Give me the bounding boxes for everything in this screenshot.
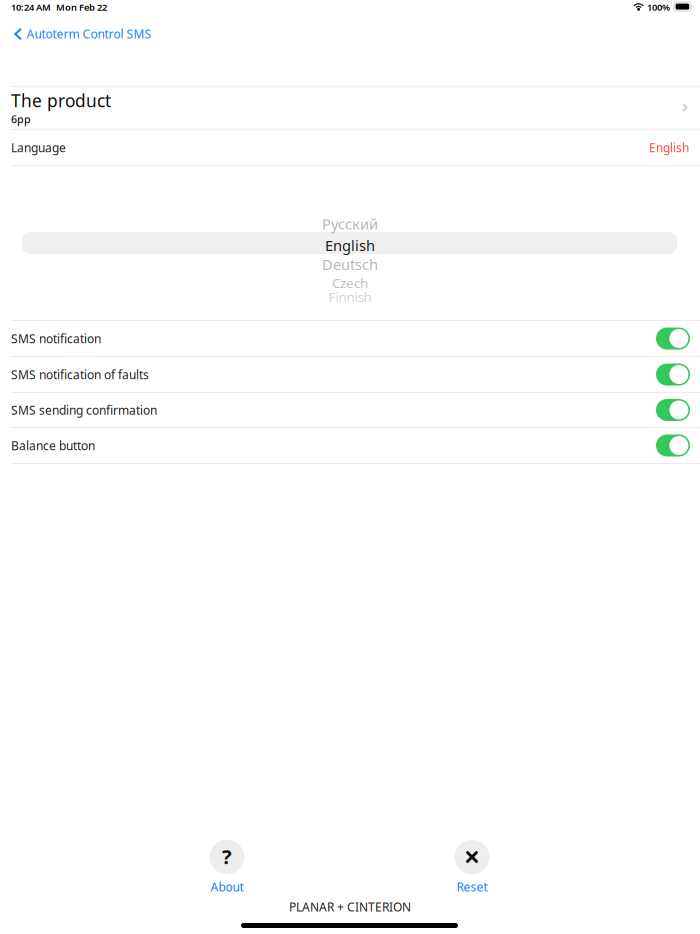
button[interactable]: ? xyxy=(192,840,262,895)
staticText: Balance button xyxy=(11,437,95,453)
button[interactable]: Balance button xyxy=(0,428,700,463)
staticText: Finnish xyxy=(328,288,371,306)
staticText: English xyxy=(649,139,689,155)
staticText: English xyxy=(325,235,375,255)
staticText: SMS sending confirmation xyxy=(11,402,157,418)
button[interactable]: SMS sending confirmation xyxy=(0,393,700,427)
button[interactable]: Autoterm Control SMS xyxy=(14,21,159,47)
staticText: PLANAR + CINTERION xyxy=(289,899,411,915)
staticText: 10:24 AM xyxy=(11,1,51,13)
staticText: Czech xyxy=(332,274,368,292)
button[interactable]: The product xyxy=(0,87,700,129)
staticText: 100% xyxy=(647,1,670,13)
staticText: Autoterm Control SMS xyxy=(26,26,151,42)
staticText: Deutsch xyxy=(322,254,378,274)
staticText: Mon Feb 22 xyxy=(56,1,107,13)
staticText: 6pp xyxy=(11,112,31,126)
staticText: SMS notification of faults xyxy=(11,366,149,382)
button[interactable]: SMS notification xyxy=(0,321,700,356)
staticText: Language xyxy=(11,139,66,155)
staticText: About xyxy=(210,879,243,895)
staticText: Русский xyxy=(322,214,378,233)
button[interactable]: SMS notification of faults xyxy=(0,357,700,392)
button[interactable]: Русский xyxy=(180,206,520,326)
staticText: Italiano xyxy=(334,299,366,311)
staticText: ? xyxy=(222,843,232,870)
staticText: Reset xyxy=(456,879,487,895)
staticText: The product xyxy=(11,89,111,112)
staticText: SMS notification xyxy=(11,330,101,346)
button[interactable]: Reset xyxy=(437,840,507,895)
button[interactable]: Language xyxy=(0,130,700,165)
